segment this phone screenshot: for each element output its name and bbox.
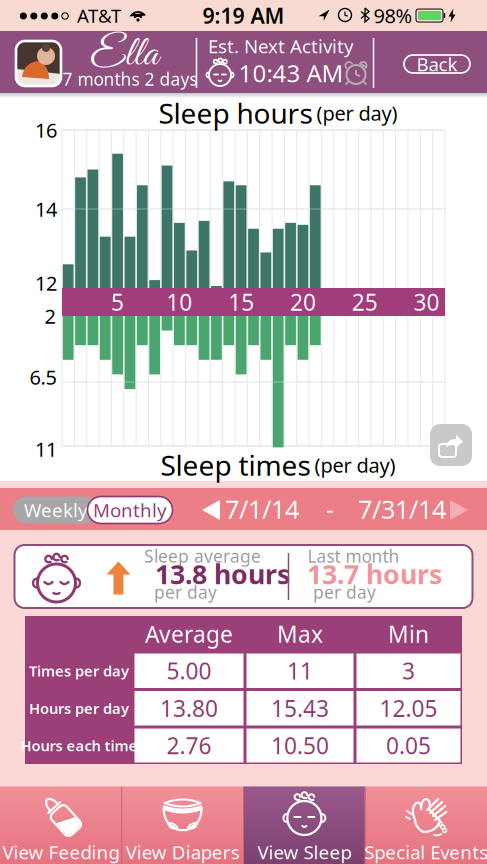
button[interactable]: Back [404,55,470,73]
staticText: 5 [111,287,124,317]
staticText: Special Events [364,840,487,864]
staticText: Ella [90,28,158,82]
button[interactable]: Baby profile [16,41,61,86]
staticText: 12.05 [379,693,437,723]
staticText: Weekly [24,498,88,522]
button[interactable]: Special Events [365,786,487,864]
button[interactable]: View Diapers [122,786,244,864]
staticText: 16 [35,117,57,143]
staticText: 20 [290,287,316,317]
staticText: 13.8 hours [155,556,290,592]
staticText: View Diapers [126,840,240,864]
staticText: 3 [402,656,415,686]
staticText: 12 [35,270,57,296]
staticText: 7/31/14 [358,492,446,526]
staticText: 10 [166,287,192,317]
staticText: Max [277,619,323,649]
staticText: 14 [35,196,57,222]
staticText: Times per day [29,661,129,680]
staticText: 13.7 hours [307,556,442,592]
staticText: Sleep hours [158,94,312,132]
staticText: 2.76 [166,730,211,760]
button[interactable]: View Sleep [243,786,365,864]
staticText: 7/1/14 [225,492,299,526]
button[interactable]: Share [430,424,472,466]
staticText: View Feeding [2,840,119,864]
staticText: (per day) [316,100,397,126]
staticText: (per day) [314,452,395,478]
staticText: 15.43 [271,693,329,723]
button[interactable]: View Feeding [0,786,122,864]
button[interactable]: Set reminder [343,60,369,86]
staticText: Last month [307,544,399,567]
staticText: 11 [287,656,313,686]
staticText: 10.50 [271,730,329,760]
staticText: 98% [373,2,412,29]
staticText: 25 [352,287,378,317]
staticText: - [326,492,334,526]
staticText: 11 [35,436,57,462]
staticText: 0.05 [386,730,431,760]
staticText: 9:19 AM [202,1,284,30]
staticText: Sleep average [144,544,261,567]
staticText: 5.00 [166,656,211,686]
staticText: 7 months 2 days [62,67,197,90]
staticText: Monthly [93,498,167,522]
staticText: Back [416,52,457,76]
staticText: 6.5 [29,364,56,390]
staticText: AT&T [77,3,121,28]
button[interactable]: Monthly [87,496,172,523]
staticText: Hours each time [20,736,137,755]
staticText: Average [145,619,233,649]
staticText: 2 [44,303,55,329]
staticText: 10:43 AM [238,57,343,89]
staticText: per day [154,580,217,603]
button[interactable]: Previous month [200,499,222,521]
staticText: View Sleep [257,840,351,864]
staticText: Hours per day [29,698,129,718]
button[interactable]: Next month [448,499,470,521]
staticText: Min [388,619,429,649]
button[interactable]: Weekly [13,496,99,523]
staticText: 30 [413,287,439,317]
staticText: 13.80 [160,693,218,723]
staticText: Sleep times [160,446,310,484]
staticText: per day [313,580,376,603]
staticText: 15 [228,287,254,317]
staticText: Est. Next Activity [208,34,354,58]
